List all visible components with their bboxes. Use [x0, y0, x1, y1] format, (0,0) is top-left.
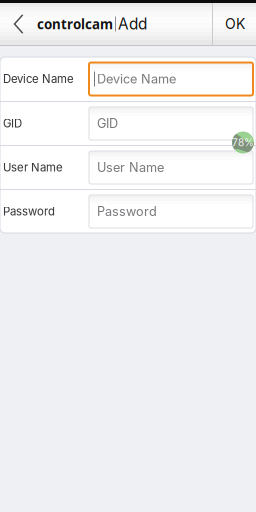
button[interactable]: OK	[214, 3, 256, 45]
staticText: Password	[97, 204, 157, 219]
staticText: OK	[225, 15, 245, 32]
staticText: Password	[3, 205, 55, 218]
staticText: GID	[3, 117, 22, 130]
staticText: 78%	[232, 136, 254, 149]
staticText: User Name	[3, 161, 63, 174]
button[interactable]: Back	[0, 3, 37, 45]
staticText: Device Name	[97, 71, 176, 87]
staticText: User Name	[97, 160, 164, 175]
staticText: GID	[97, 116, 118, 131]
staticText: controlcam	[37, 15, 113, 33]
staticText: Add	[118, 15, 147, 33]
staticText: Device Name	[3, 72, 74, 86]
